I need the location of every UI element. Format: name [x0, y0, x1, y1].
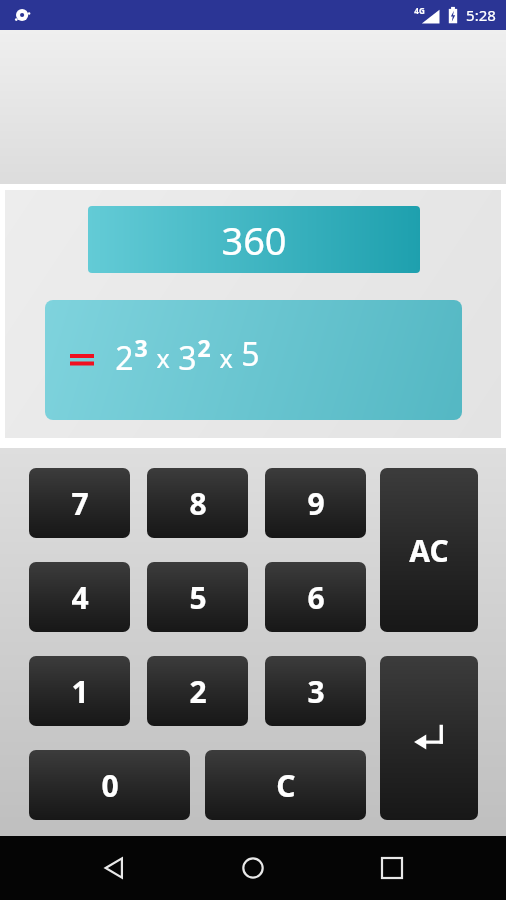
button[interactable]: Home — [229, 844, 277, 892]
staticText: 1 — [71, 671, 89, 712]
button[interactable]: 360 — [88, 206, 420, 273]
button[interactable]: 8 — [147, 468, 248, 538]
staticText: 6 — [307, 577, 325, 618]
button[interactable]: 2 — [45, 300, 462, 420]
staticText: 0 — [101, 765, 119, 806]
button[interactable]: 2 — [147, 656, 248, 726]
staticText: 3 — [307, 671, 325, 712]
staticText: AC — [409, 530, 449, 571]
staticText: 360 — [221, 214, 287, 266]
staticText: 2 — [115, 336, 134, 380]
button[interactable]: 6 — [265, 562, 366, 632]
staticText: C — [276, 765, 296, 806]
staticText: 4 — [71, 577, 89, 618]
staticText: x — [219, 341, 233, 375]
button[interactable]: 0 — [29, 750, 190, 820]
button[interactable]: Back — [90, 844, 138, 892]
button[interactable]: AC — [380, 468, 478, 632]
staticText: x — [156, 341, 170, 375]
staticText: 5:28 — [466, 5, 496, 25]
button[interactable]: Recent apps — [368, 844, 416, 892]
other: Notification — [14, 6, 32, 24]
staticText: 3 — [134, 332, 148, 363]
staticText: 7 — [71, 483, 89, 524]
button[interactable]: Enter — [380, 656, 478, 820]
staticText: 2 — [197, 332, 211, 363]
button[interactable]: 3 — [265, 656, 366, 726]
button[interactable]: 7 — [29, 468, 130, 538]
button[interactable]: 9 — [265, 468, 366, 538]
staticText: 5 — [189, 577, 207, 618]
staticText: 4G — [414, 5, 425, 16]
staticText: 5 — [241, 332, 260, 376]
button[interactable]: C — [205, 750, 366, 820]
staticText: 9 — [307, 483, 325, 524]
staticText: 3 — [178, 336, 197, 380]
button[interactable]: 5 — [147, 562, 248, 632]
staticText: 8 — [189, 483, 207, 524]
button[interactable]: 4 — [29, 562, 130, 632]
button[interactable]: 1 — [29, 656, 130, 726]
staticText: 2 — [189, 671, 207, 712]
